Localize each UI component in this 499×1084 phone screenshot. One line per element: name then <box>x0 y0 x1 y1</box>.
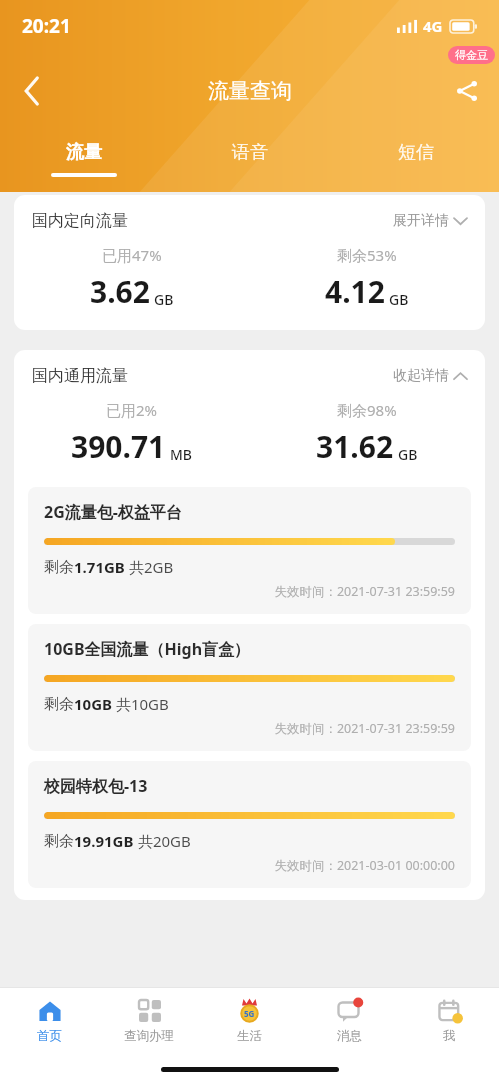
staticText: 共10GB <box>112 694 169 714</box>
staticText: 390.71 <box>71 426 166 467</box>
staticText: 已用47% <box>102 245 162 265</box>
staticText: 10GB全国流量（High盲盒） <box>44 638 251 660</box>
staticText: GB <box>154 290 174 309</box>
button[interactable]: 展开详情 <box>393 212 467 230</box>
staticText: 3.62 <box>90 271 150 312</box>
staticText: 20:21 <box>22 13 71 39</box>
button[interactable]: 国内定向流量 <box>14 195 485 330</box>
staticText: 共20GB <box>134 831 191 851</box>
staticText: 生活 <box>237 1028 262 1044</box>
button[interactable]: 流量 <box>0 134 167 192</box>
staticText: 剩余 <box>44 695 74 714</box>
staticText: 语音 <box>232 141 268 164</box>
button[interactable]: 消息 <box>299 988 399 1054</box>
staticText: 收起详情 <box>393 367 449 385</box>
staticText: GB <box>389 290 409 309</box>
button[interactable]: 收起详情 <box>393 367 467 385</box>
staticText: 1.71GB <box>74 557 125 577</box>
button[interactable]: 首页 <box>0 988 99 1054</box>
staticText: 流量 <box>66 141 102 164</box>
button[interactable]: 查询办理 <box>99 988 199 1054</box>
staticText: 已用2% <box>106 400 158 420</box>
button[interactable]: Share <box>443 67 491 115</box>
button[interactable]: 10GB全国流量（High盲盒） <box>28 624 471 751</box>
staticText: 剩余 <box>44 558 74 577</box>
staticText: 2G流量包-权益平台 <box>44 501 182 523</box>
staticText: 10GB <box>74 694 112 714</box>
staticText: 展开详情 <box>393 212 449 230</box>
staticText: 失效时间：2021-07-31 23:59:59 <box>44 583 455 600</box>
staticText: 得金豆 <box>455 48 488 62</box>
staticText: 31.62 <box>316 426 394 467</box>
button[interactable]: 2G流量包-权益平台 <box>28 487 471 614</box>
staticText: MB <box>170 445 193 464</box>
staticText: 剩余53% <box>337 245 397 265</box>
button[interactable]: 短信 <box>333 134 499 192</box>
staticText: 我 <box>443 1028 456 1044</box>
button[interactable]: Back <box>6 65 58 117</box>
button[interactable]: 5G <box>199 988 299 1054</box>
staticText: GB <box>398 445 418 464</box>
staticText: 国内定向流量 <box>32 211 128 231</box>
staticText: 消息 <box>337 1028 362 1044</box>
staticText: 失效时间：2021-03-01 00:00:00 <box>44 857 455 874</box>
staticText: 失效时间：2021-07-31 23:59:59 <box>44 720 455 737</box>
staticText: 4.12 <box>325 271 385 312</box>
staticText: 剩余 <box>44 832 74 851</box>
button[interactable]: 得金豆 <box>455 48 488 62</box>
staticText: 共2GB <box>125 557 174 577</box>
staticText: 首页 <box>37 1028 62 1044</box>
button[interactable]: 校园特权包-13 <box>28 761 471 888</box>
button[interactable]: 语音 <box>167 134 333 192</box>
staticText: 19.91GB <box>74 831 134 851</box>
button[interactable]: 我 <box>399 988 499 1054</box>
staticText: 国内通用流量 <box>32 366 128 386</box>
staticText: 剩余98% <box>337 400 397 420</box>
staticText: 短信 <box>398 141 434 164</box>
staticText: 4G <box>423 16 443 36</box>
staticText: 查询办理 <box>124 1028 174 1044</box>
staticText: 5G <box>244 1008 255 1019</box>
staticText: 校园特权包-13 <box>44 775 148 797</box>
staticText: 流量查询 <box>208 78 292 104</box>
